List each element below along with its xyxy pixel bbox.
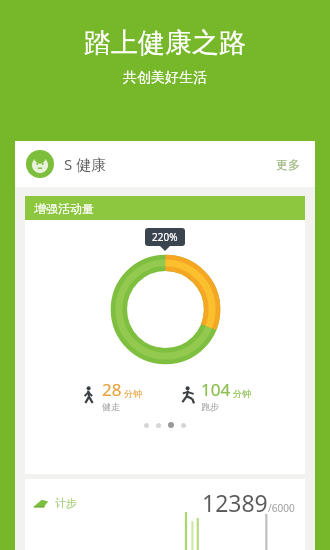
staticText: 增强活动量 bbox=[34, 201, 94, 216]
staticText: 更多 bbox=[276, 157, 300, 172]
button[interactable] bbox=[181, 423, 186, 428]
button[interactable] bbox=[156, 423, 161, 428]
button[interactable]: Walking bbox=[79, 378, 142, 412]
staticText: 220% bbox=[152, 230, 178, 244]
staticText: 分钟 bbox=[124, 388, 142, 399]
staticText: 12389 bbox=[202, 487, 268, 518]
staticText: 分钟 bbox=[233, 388, 251, 399]
button[interactable] bbox=[144, 423, 149, 428]
staticText: 共创美好生活 bbox=[123, 69, 207, 87]
button[interactable]: Running bbox=[178, 378, 251, 412]
other: Running bbox=[178, 385, 198, 405]
button[interactable] bbox=[168, 422, 174, 428]
staticText: 踏上健康之路 bbox=[84, 26, 246, 60]
staticText: 104 bbox=[201, 378, 231, 401]
staticText: 跑步 bbox=[201, 401, 219, 412]
other: Steps bbox=[33, 495, 49, 511]
button[interactable]: S 健康 bbox=[15, 141, 315, 187]
button[interactable]: Steps bbox=[25, 479, 305, 550]
staticText: 28 bbox=[102, 378, 122, 401]
staticText: 健走 bbox=[102, 401, 120, 412]
staticText: S 健康 bbox=[64, 154, 107, 174]
button[interactable]: 更多 bbox=[272, 153, 304, 176]
staticText: 计步 bbox=[55, 496, 77, 510]
button[interactable]: 增强活动量 bbox=[25, 196, 305, 220]
other: Walking bbox=[79, 385, 99, 405]
staticText: /6000 bbox=[268, 501, 295, 515]
